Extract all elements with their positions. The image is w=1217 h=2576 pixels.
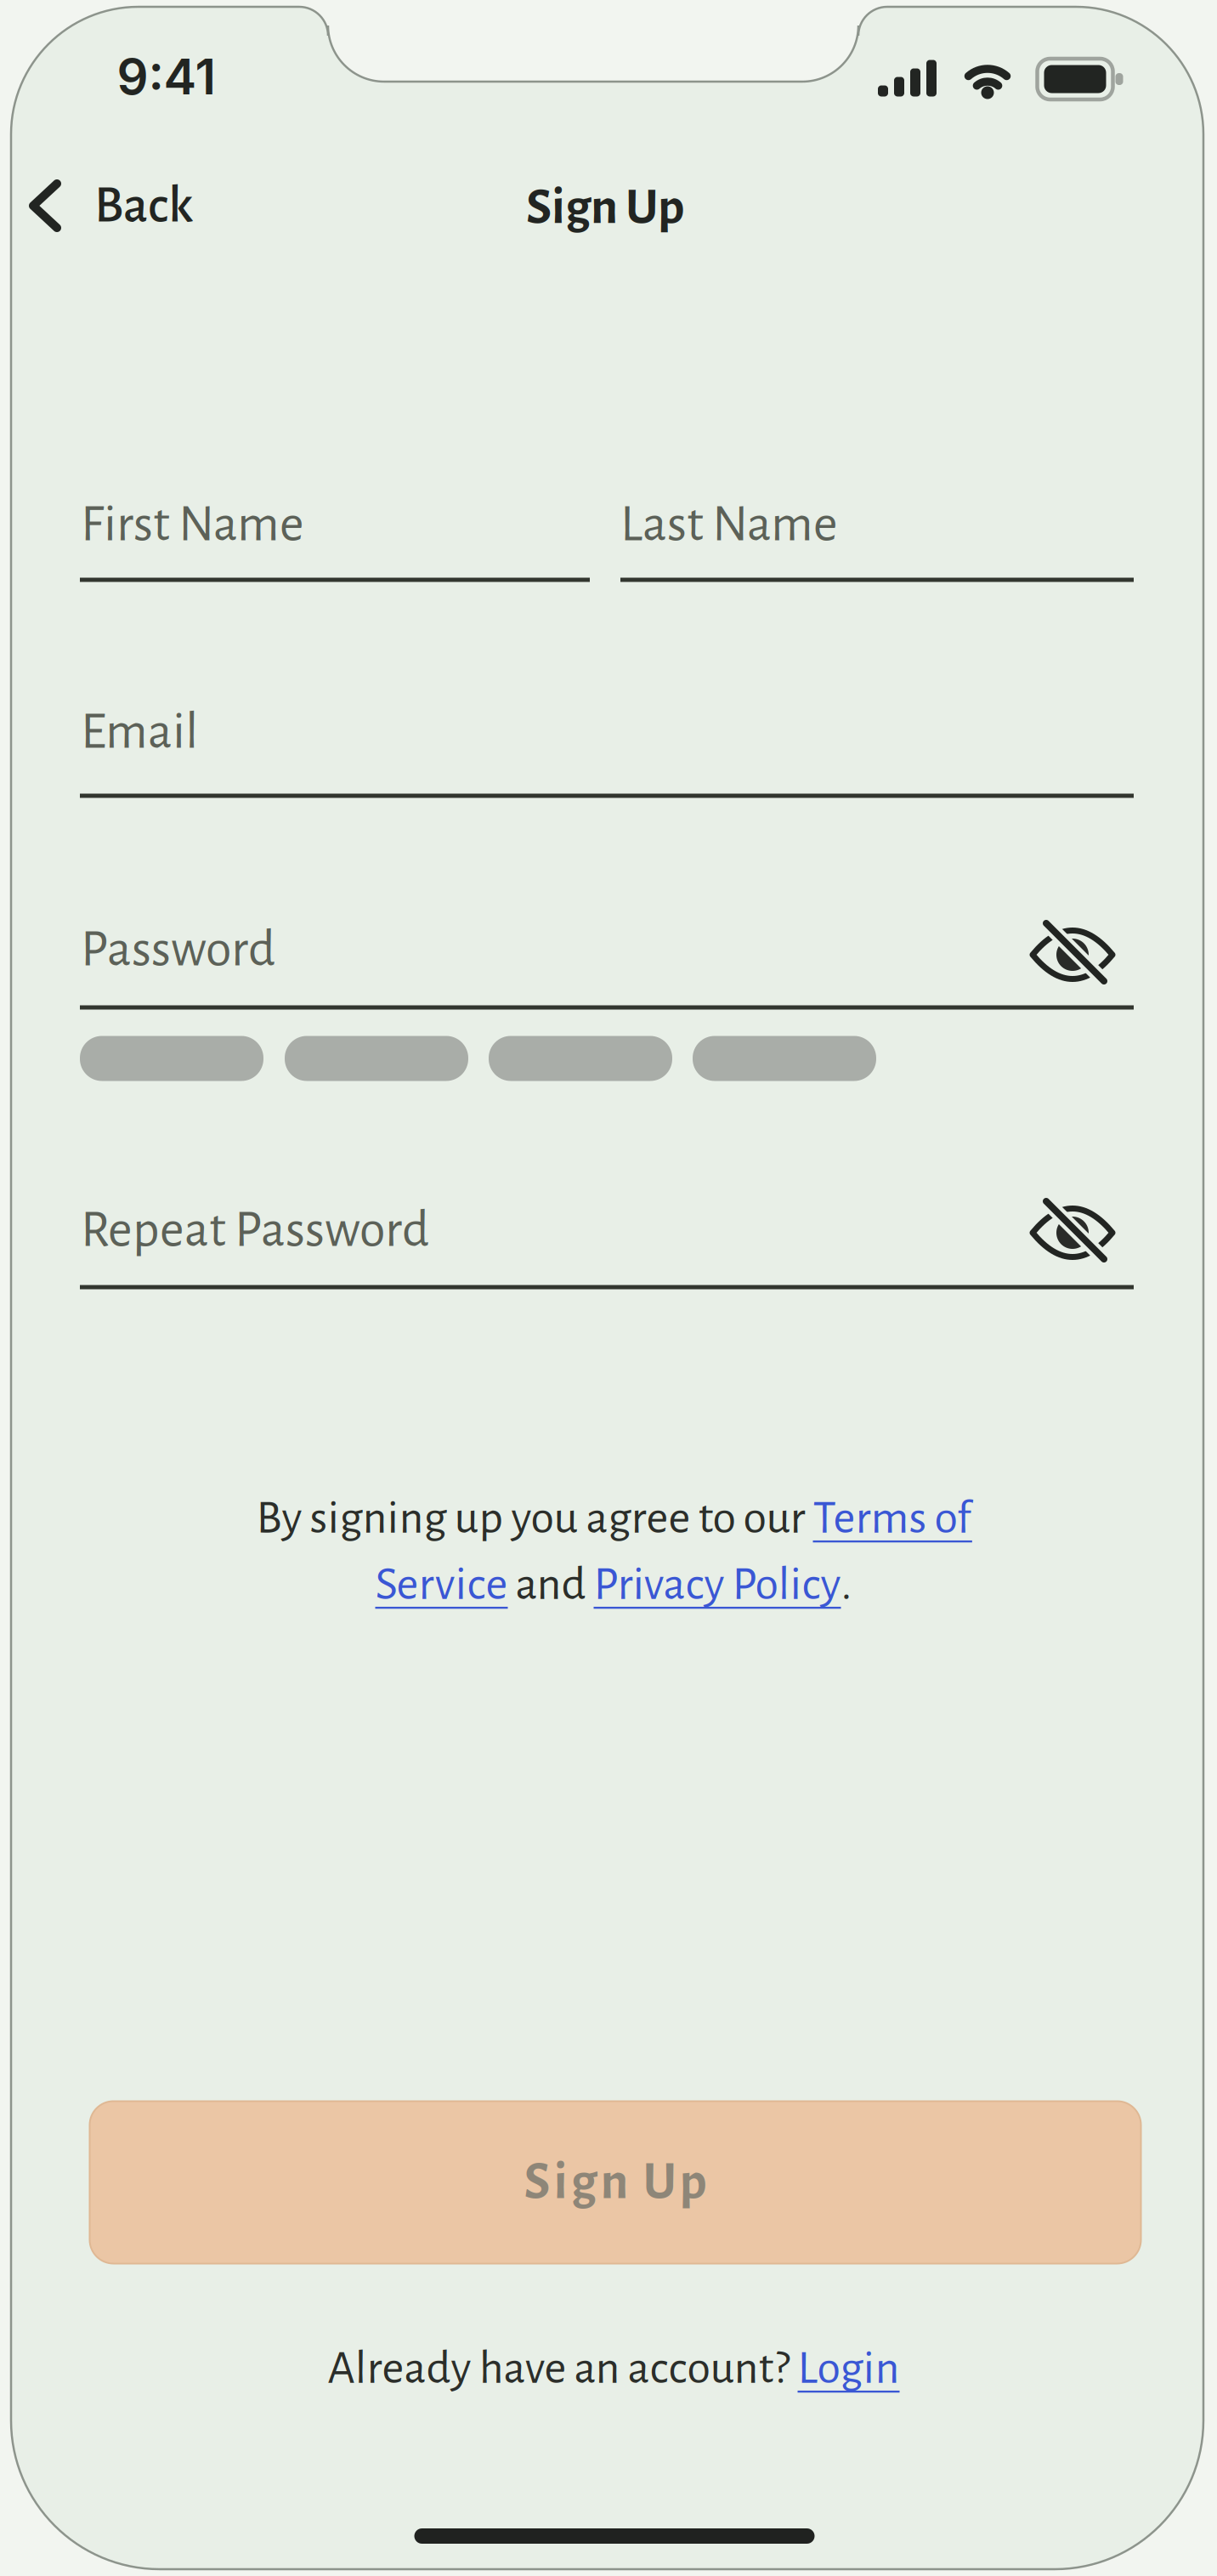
button[interactable]: Show password (1026, 920, 1119, 988)
button[interactable]: Sign Up (90, 2101, 1141, 2264)
staticText: Already have an account? (328, 2345, 798, 2392)
staticText: By signing up you agree to our (256, 1495, 813, 1542)
staticText: Sign Up (526, 182, 684, 233)
staticText: Login (798, 2345, 900, 2392)
button[interactable]: Login (798, 2345, 900, 2392)
staticText: Service (375, 1561, 508, 1609)
button[interactable]: Terms of (813, 1495, 971, 1542)
staticText: Terms of (813, 1495, 971, 1542)
staticText: Password (81, 923, 275, 976)
staticText: and (508, 1561, 594, 1609)
staticText: . (841, 1561, 852, 1609)
button[interactable]: Show repeated password (1026, 1198, 1119, 1266)
button[interactable]: Service (375, 1561, 508, 1609)
staticText: Sign Up (524, 2156, 707, 2209)
staticText: Privacy Policy (594, 1561, 841, 1609)
staticText: Email (81, 706, 198, 758)
button[interactable]: Back (28, 172, 385, 240)
staticText: Last Name (620, 498, 838, 551)
staticText: 9:41 (117, 47, 216, 106)
staticText: First Name (81, 498, 304, 551)
button[interactable]: Privacy Policy (594, 1561, 841, 1609)
staticText: Repeat Password (81, 1204, 429, 1257)
staticText: Back (94, 179, 193, 232)
